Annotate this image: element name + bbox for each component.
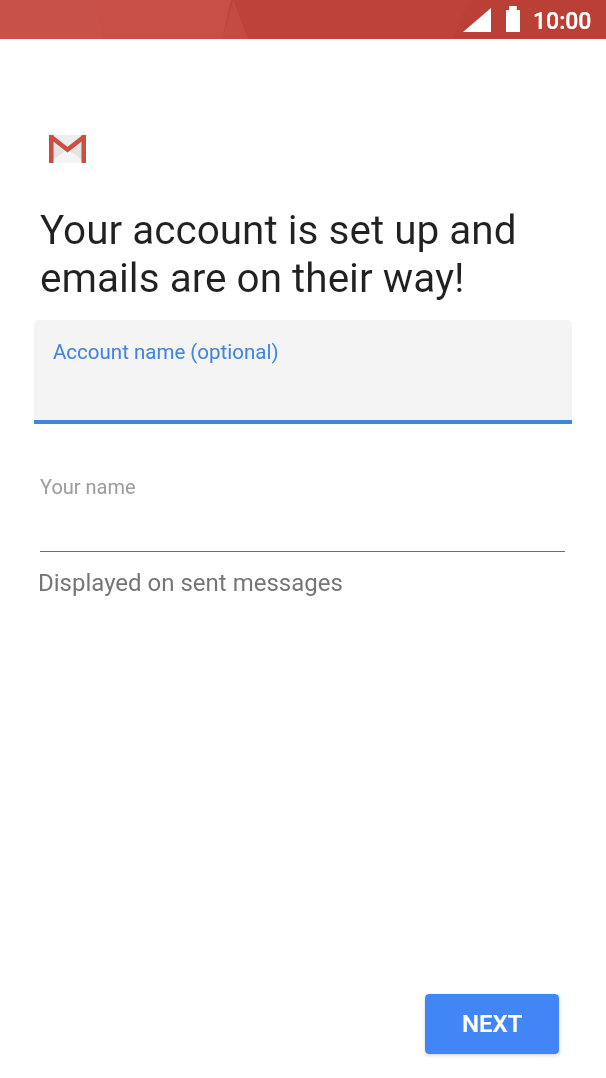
staticText: Your name <box>40 475 136 498</box>
other: Signal strength <box>463 8 491 32</box>
button[interactable]: Account name (optional) <box>34 320 572 425</box>
other: Battery <box>506 6 520 32</box>
staticText: Account name (optional) <box>53 340 279 364</box>
staticText: 10:00 <box>533 8 592 35</box>
button[interactable]: Your name <box>40 470 565 552</box>
staticText: Your account is set up and emails are on… <box>40 206 517 302</box>
staticText: NEXT <box>462 1010 523 1038</box>
staticText: Displayed on sent messages <box>38 569 343 597</box>
button[interactable]: NEXT <box>425 994 559 1054</box>
